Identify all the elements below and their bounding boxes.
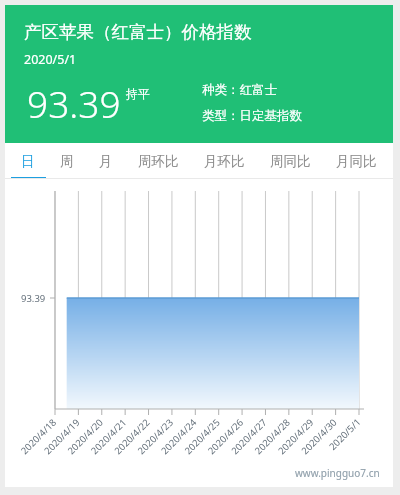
staticText: 93.39 (27, 78, 121, 128)
staticText: 周同比 (270, 153, 311, 170)
staticText: 2020/5/1 (24, 51, 77, 68)
staticText: 月环比 (204, 153, 245, 170)
staticText: 持平 (126, 86, 150, 101)
staticText: 产区苹果（红富士）价格指数 (24, 21, 252, 43)
staticText: 种类：红富士 (202, 82, 277, 98)
button[interactable]: 月 (86, 143, 125, 179)
staticText: 月同比 (336, 153, 377, 170)
staticText: 周环比 (138, 153, 179, 170)
button[interactable]: 周环比 (125, 143, 191, 179)
button[interactable]: 周 (47, 143, 86, 179)
button[interactable]: 月环比 (191, 143, 257, 179)
button[interactable]: 月同比 (323, 143, 389, 179)
button[interactable]: 周同比 (257, 143, 323, 179)
staticText: 日 (21, 153, 35, 170)
staticText: 月 (99, 153, 113, 170)
staticText: 周 (60, 153, 74, 170)
staticText: 类型：日定基指数 (202, 108, 302, 124)
button[interactable]: 日 (9, 143, 47, 179)
